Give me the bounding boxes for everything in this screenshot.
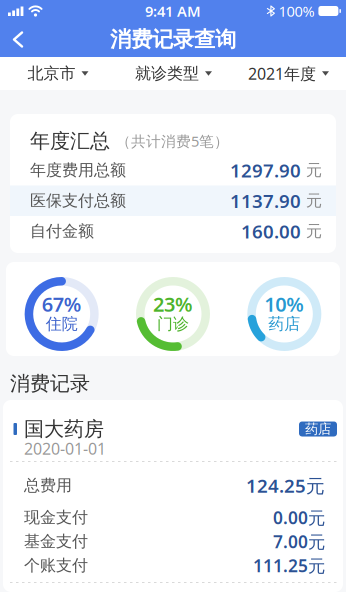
staticText: 消费记录查询 (110, 26, 236, 53)
staticText: 160.00 (241, 219, 301, 244)
staticText: 消费记录 (10, 371, 90, 396)
staticText: 总费用 (24, 476, 72, 495)
staticText: 药店 (305, 421, 331, 437)
staticText: 元 (306, 191, 322, 211)
staticText: 自付金额 (30, 221, 94, 241)
staticText: 124.25元 (246, 473, 325, 498)
staticText: 年度费用总额 (30, 160, 126, 180)
staticText: 门诊 (157, 314, 189, 334)
staticText: 1297.90 (230, 158, 301, 183)
staticText: 1137.90 (230, 188, 301, 213)
staticText: 67% (42, 291, 82, 317)
staticText: 医保支付总额 (30, 191, 126, 211)
button[interactable]: 2021年度 (248, 57, 329, 90)
staticText: 10% (264, 291, 304, 317)
staticText: 7.00元 (273, 530, 325, 553)
staticText: 国大药房 (24, 417, 104, 441)
button[interactable]: 国大药房 (3, 400, 343, 592)
staticText: 住院 (46, 314, 78, 334)
staticText: 现金支付 (24, 508, 88, 527)
staticText: 个账支付 (24, 556, 88, 575)
staticText: （共计消费5笔） (116, 131, 229, 151)
staticText: 元 (306, 160, 322, 180)
button[interactable]: 返回 (0, 22, 40, 57)
staticText: 药店 (268, 314, 300, 334)
staticText: 元 (306, 221, 322, 241)
staticText: 23% (153, 291, 193, 317)
staticText: 基金支付 (24, 532, 88, 551)
staticText: 北京市 (27, 64, 75, 83)
staticText: 111.25元 (253, 554, 325, 577)
button[interactable]: 就诊类型 (135, 57, 212, 90)
staticText: 年度汇总 (30, 129, 110, 153)
staticText: 0.00元 (273, 506, 325, 529)
button[interactable]: 北京市 (27, 57, 88, 90)
staticText: 9:41 AM (145, 1, 201, 21)
staticText: 就诊类型 (135, 64, 199, 83)
staticText: 2020-01-01 (24, 438, 106, 459)
staticText: 100% (278, 1, 314, 21)
staticText: 2021年度 (248, 63, 316, 84)
